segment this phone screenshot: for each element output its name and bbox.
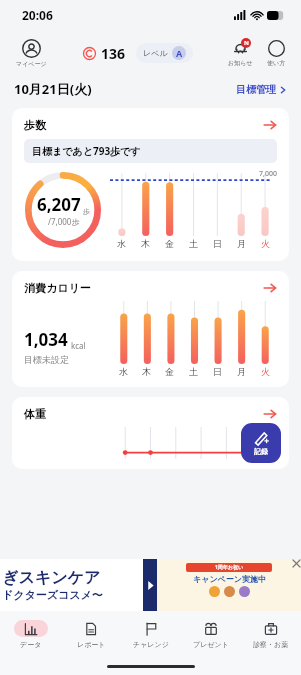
staticText: 金 [165,366,174,377]
staticText: 1,034 [24,328,68,351]
staticText: 使い方 [267,59,286,67]
staticText: キャンペーン実施中 [193,574,266,584]
staticText: ぎスキンケア [2,568,101,588]
staticText: ドクターズコスメ〜 [2,588,103,602]
staticText: プレゼント [193,640,229,649]
button[interactable]: プレゼント [181,611,241,657]
button[interactable]: 目標管理 [236,83,287,96]
button[interactable]: 消費カロリー [12,271,289,387]
button[interactable]: 詳細 [263,281,277,295]
staticText: 1周年お祝い [215,564,244,571]
button[interactable]: データ [0,611,61,657]
staticText: A [176,47,183,59]
staticText: /7,000歩 [48,216,80,227]
button[interactable]: 使い方 [264,40,289,67]
button[interactable]: 詳細 [263,118,277,132]
button[interactable]: 136 [83,44,126,63]
staticText: レポート [77,640,106,649]
staticText: 木 [142,366,151,377]
staticText: 目標管理 [236,83,276,96]
staticText: 木 [141,238,150,249]
staticText: チャレンジ [133,640,169,649]
button[interactable]: 歩数 [12,108,289,261]
staticText: 月 [237,238,246,249]
staticText: 月 [237,366,246,377]
staticText: 6,207 [37,193,81,216]
staticText: 10月21日(火) [14,80,92,98]
button[interactable]: マイページ [12,39,51,68]
button[interactable]: お知らせ [225,40,256,67]
staticText: 目標未設定 [24,354,69,365]
staticText: 土 [189,238,198,249]
staticText: 水 [119,366,128,377]
staticText: 7,000 [259,169,277,179]
staticText: 診察・お薬 [253,640,289,649]
staticText: 日 [213,238,222,249]
staticText: 歩 [83,207,90,216]
staticText: レベル [143,48,168,58]
staticText: 歩数 [24,118,46,132]
staticText: 金 [165,238,174,249]
staticText: 土 [189,366,198,377]
button[interactable]: ぎスキンケア [0,559,301,611]
button[interactable]: 詳細 [263,407,277,421]
staticText: 火 [261,238,270,249]
button[interactable]: 診察・お薬 [241,611,301,657]
staticText: kcal [71,340,86,351]
button[interactable]: 記録 [241,423,281,463]
staticText: お知らせ [228,59,253,67]
button[interactable]: チャレンジ [121,611,181,657]
staticText: 日 [213,366,222,377]
staticText: N [244,39,249,47]
button[interactable]: レポート [61,611,121,657]
staticText: 体重 [24,407,46,421]
button[interactable]: 体重 [12,397,289,469]
staticText: 火 [261,366,270,377]
button[interactable]: レベル [136,43,193,63]
staticText: 水 [117,238,126,249]
staticText: データ [20,640,42,649]
staticText: 消費カロリー [24,281,91,295]
staticText: マイページ [16,60,47,68]
other: 閉じる [293,560,300,567]
staticText: 目標まであと793歩です [32,144,141,158]
staticText: 20:06 [22,7,53,23]
staticText: 記録 [254,447,268,456]
staticText: 136 [101,44,126,63]
